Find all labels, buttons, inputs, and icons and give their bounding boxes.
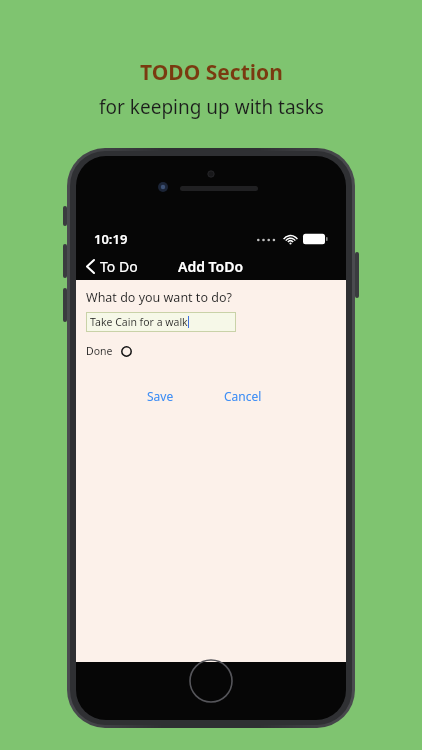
staticText: To Do: [100, 257, 138, 276]
staticText: Cancel: [224, 388, 262, 404]
staticText: Take Cain for a walk: [90, 315, 188, 329]
button[interactable]: Take Cain for a walk: [86, 312, 236, 332]
button[interactable]: Save: [139, 384, 182, 408]
staticText: for keeping up with tasks: [99, 94, 324, 120]
staticText: TODO Section: [140, 58, 283, 87]
button[interactable]: Home: [189, 659, 233, 703]
button[interactable]: To Do: [82, 254, 142, 279]
staticText: Save: [147, 388, 174, 404]
staticText: What do you want to do?: [86, 289, 232, 306]
button[interactable]: Done: [86, 342, 138, 360]
staticText: Add ToDo: [178, 257, 244, 276]
staticText: 10:19: [94, 230, 128, 248]
button[interactable]: Cancel: [216, 384, 270, 408]
staticText: Done: [86, 344, 113, 358]
